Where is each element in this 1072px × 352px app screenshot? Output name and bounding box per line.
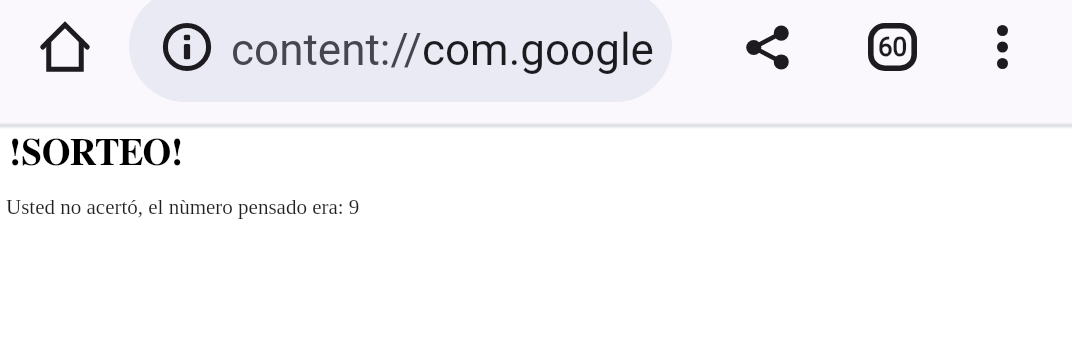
button[interactable]: Switch or close tabs, 60 open [848,3,936,91]
button[interactable]: Share [723,3,811,91]
staticText: Usted no acertó, el nùmero pensado era: … [6,195,360,218]
staticText: content://com.google [231,24,654,76]
other: Site information [163,23,211,71]
button[interactable]: Home [21,3,109,91]
button[interactable]: More options [958,3,1046,91]
staticText: !SORTEO! [9,135,184,172]
staticText: 60 [878,32,908,62]
button[interactable]: Site information [129,0,672,102]
